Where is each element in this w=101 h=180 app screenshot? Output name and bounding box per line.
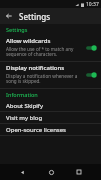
staticText: 10:37 — [86, 1, 99, 8]
button[interactable]: Back — [15, 165, 29, 179]
staticText: Information — [6, 91, 38, 98]
button[interactable]: Visit my blog — [0, 112, 101, 123]
button[interactable]: About Skipify — [0, 100, 101, 111]
staticText: Allow wildcards — [6, 37, 51, 45]
staticText: Settings — [6, 26, 28, 33]
staticText: Allow the use of * to match any sequence… — [6, 46, 81, 58]
staticText: About Skipify — [6, 102, 43, 110]
button[interactable]: Allow wildcards — [0, 35, 101, 61]
staticText: Settings — [19, 11, 51, 22]
button[interactable]: Recent apps — [72, 165, 86, 179]
button[interactable]: Open-source licenses — [0, 124, 101, 135]
button[interactable]: Display notifications — [0, 62, 101, 88]
staticText: Display a notification whenever a song i… — [6, 73, 81, 85]
staticText: Display notifications — [6, 64, 65, 72]
button[interactable]: Toggle — [85, 71, 97, 79]
staticText: Visit my blog — [6, 114, 43, 122]
button[interactable]: Home — [44, 165, 58, 179]
button[interactable]: Back — [4, 11, 14, 21]
button[interactable]: Toggle — [85, 44, 97, 52]
staticText: Open-source licenses — [6, 126, 66, 134]
